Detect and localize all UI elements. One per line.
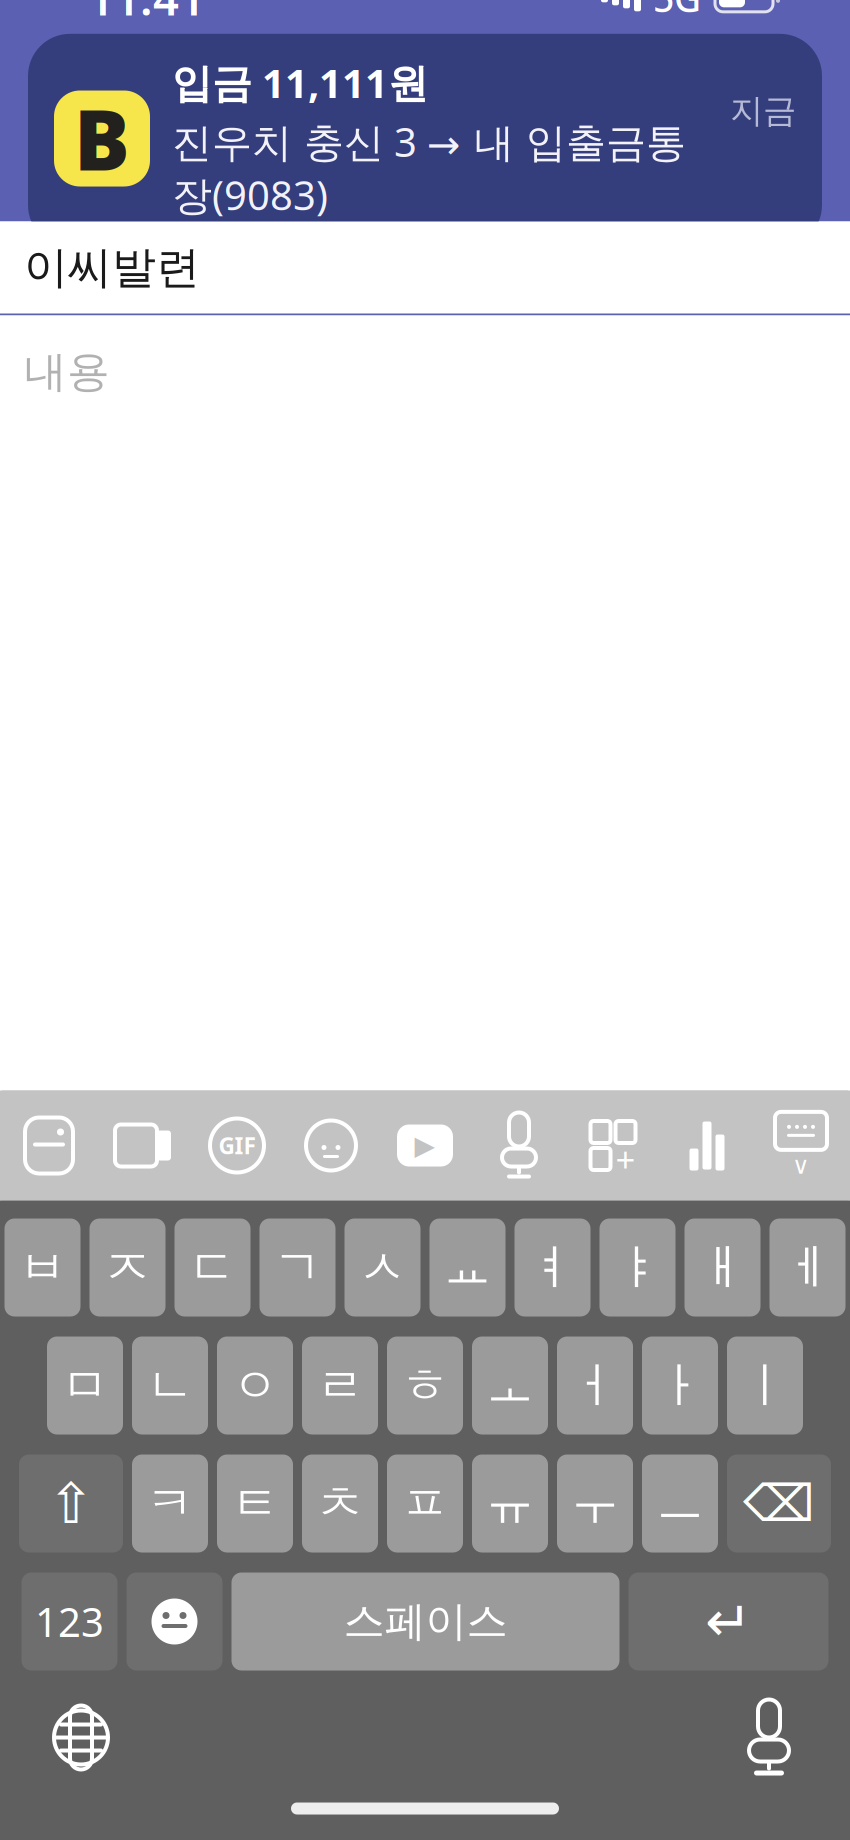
button[interactable]: GIF [190, 1090, 284, 1200]
button[interactable]: ㅠ [472, 1454, 548, 1552]
staticText: 11:41 [88, 0, 205, 28]
staticText: 내용 [24, 345, 110, 398]
staticText: ㅡ [656, 1474, 704, 1533]
button[interactable]: B [28, 34, 822, 247]
button[interactable]: ㅐ [684, 1218, 760, 1316]
staticText: ㅋ [146, 1474, 194, 1533]
staticText: ↵ [705, 1590, 752, 1653]
button[interactable]: ㅣ [727, 1336, 803, 1434]
button[interactable]: ㄹ [302, 1336, 378, 1434]
staticText: ㅈ [103, 1238, 151, 1297]
staticText: ㅎ [401, 1356, 449, 1415]
staticText: ㄱ [273, 1238, 321, 1297]
staticText: ㅍ [401, 1474, 449, 1533]
staticText: ㅇ [231, 1356, 279, 1415]
button[interactable]: ㄴ [132, 1336, 208, 1434]
button[interactable]: ㅏ [642, 1336, 718, 1434]
staticText: ㅅ [358, 1238, 406, 1297]
staticText: ㅓ [571, 1356, 619, 1415]
button[interactable]: Photos [2, 1090, 96, 1200]
button[interactable]: Dictation [714, 1694, 824, 1780]
staticText: ㅗ [486, 1356, 534, 1415]
button[interactable]: Next keyboard [26, 1694, 136, 1780]
staticText: ㄷ [188, 1238, 236, 1297]
button[interactable]: Video [96, 1090, 190, 1200]
button[interactable]: Poll [660, 1090, 754, 1200]
button[interactable]: Hide keyboard [754, 1090, 848, 1200]
button[interactable]: ㅑ [599, 1218, 675, 1316]
staticText: GIF [218, 1130, 255, 1160]
button[interactable]: Shift [19, 1454, 123, 1552]
staticText: ㅁ [61, 1356, 109, 1415]
staticText: ㅑ [613, 1238, 661, 1297]
button[interactable]: Return [628, 1572, 828, 1670]
button[interactable]: ㅅ [344, 1218, 420, 1316]
button[interactable]: ㅜ [557, 1454, 633, 1552]
button[interactable]: ㅌ [217, 1454, 293, 1552]
staticText: 5G [653, 0, 701, 23]
staticText: ㅐ [698, 1238, 746, 1297]
staticText: 진우치 충신 3 → 내 입출금통장(9083) [172, 115, 686, 221]
staticText: ㅛ [443, 1238, 491, 1297]
button[interactable]: Voice message [472, 1090, 566, 1200]
button[interactable]: ㅎ [387, 1336, 463, 1434]
button[interactable]: ㅔ [769, 1218, 845, 1316]
button[interactable]: 123 [21, 1572, 117, 1670]
staticText: ㅔ [783, 1238, 831, 1297]
staticText: ㅜ [571, 1474, 619, 1533]
button[interactable]: More [566, 1090, 660, 1200]
staticText: ㅌ [231, 1474, 279, 1533]
staticText: ㅠ [486, 1474, 534, 1533]
button[interactable]: ㄷ [174, 1218, 250, 1316]
button[interactable]: ㅇ [217, 1336, 293, 1434]
staticText: ㅣ [741, 1356, 789, 1415]
button[interactable]: Video share [378, 1090, 472, 1200]
staticText: 지금 [730, 90, 796, 131]
button[interactable]: ㅕ [514, 1218, 590, 1316]
staticText: ㅊ [316, 1474, 364, 1533]
staticText: ㅏ [656, 1356, 704, 1415]
button[interactable]: Emoji [126, 1572, 222, 1670]
staticText: 입금 11,111원 [172, 56, 428, 109]
button[interactable]: ㅋ [132, 1454, 208, 1552]
button[interactable]: 스페이스 [231, 1572, 619, 1670]
button[interactable]: ㅊ [302, 1454, 378, 1552]
button[interactable]: ㅈ [89, 1218, 165, 1316]
button[interactable]: ㅂ [4, 1218, 80, 1316]
button[interactable]: ㅛ [429, 1218, 505, 1316]
button[interactable]: ㄱ [259, 1218, 335, 1316]
staticText: ⇧ [47, 1472, 94, 1535]
button[interactable]: ㅓ [557, 1336, 633, 1434]
button[interactable]: ㅗ [472, 1336, 548, 1434]
button[interactable]: ㅡ [642, 1454, 718, 1552]
staticText: 스페이스 [343, 1596, 507, 1647]
button[interactable]: ㅍ [387, 1454, 463, 1552]
staticText: ㅕ [528, 1238, 576, 1297]
staticText: ⌫ [743, 1475, 815, 1532]
staticText: ▶ [414, 1130, 435, 1161]
staticText: B [74, 84, 130, 193]
staticText: 123 [35, 1595, 104, 1648]
button[interactable]: 이씨발련 [0, 221, 850, 313]
staticText: ㅂ [18, 1238, 66, 1297]
staticText: 이씨발련 [24, 240, 200, 294]
button[interactable]: ㅁ [47, 1336, 123, 1434]
button[interactable]: Emoticons [284, 1090, 378, 1200]
staticText: ㄴ [146, 1356, 194, 1415]
staticText: ㄹ [316, 1356, 364, 1415]
staticText: + [615, 1136, 635, 1182]
button[interactable]: Delete [727, 1454, 831, 1552]
staticText: ∨ [792, 1152, 810, 1179]
